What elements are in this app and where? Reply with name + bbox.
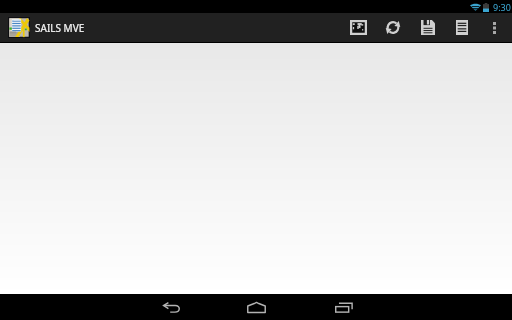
button[interactable]: SAILS MVE [0,13,93,42]
button[interactable]: Recents [299,294,384,320]
button[interactable]: Home [214,294,299,320]
staticText: SAILS MVE [35,21,85,35]
button[interactable]: Save [410,13,445,42]
button[interactable]: Refresh [376,13,410,42]
button[interactable]: Map [341,13,376,42]
staticText: 9:30 [493,1,511,13]
button[interactable]: More options [479,13,512,42]
button[interactable]: Back [129,294,214,320]
button[interactable]: List [445,13,479,42]
